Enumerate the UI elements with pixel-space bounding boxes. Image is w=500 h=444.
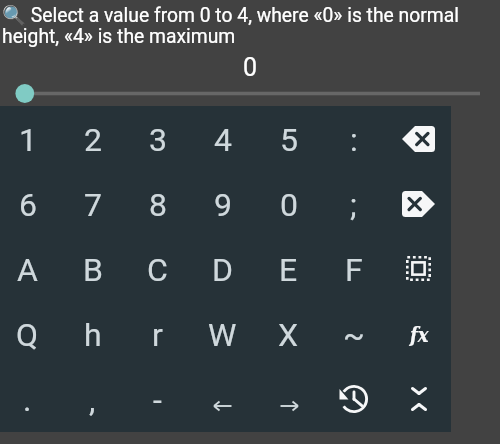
staticText: . (23, 381, 32, 419)
staticText: - (153, 381, 162, 419)
staticText: X (278, 316, 299, 354)
button[interactable] (256, 366, 321, 431)
staticText: 5 (280, 121, 298, 159)
staticText: 1 (19, 121, 37, 159)
button[interactable]: 7 (60, 171, 125, 236)
staticText: 3 (149, 121, 167, 159)
button[interactable]: 9 (190, 171, 255, 236)
button[interactable]: W (190, 301, 255, 366)
staticText: r (152, 316, 163, 354)
button[interactable]: Collapse keyboard (386, 366, 451, 431)
staticText: A (17, 251, 38, 289)
button[interactable]: h (60, 301, 125, 366)
staticText: : (350, 121, 358, 159)
staticText: fx (410, 323, 429, 346)
staticText: E (279, 251, 298, 289)
button[interactable]: 3 (125, 106, 190, 171)
button[interactable]: - (125, 366, 190, 431)
staticText: B (83, 251, 103, 289)
button[interactable]: Q (0, 301, 60, 366)
staticText: 🔍 Select a value from 0 to 4, where «0» … (2, 4, 497, 48)
button[interactable]: r (125, 301, 190, 366)
staticText: 9 (214, 186, 232, 224)
button[interactable] (190, 366, 255, 431)
staticText: ~ (343, 316, 365, 354)
button[interactable]: . (0, 366, 60, 431)
button[interactable]: 6 (0, 171, 60, 236)
staticText: 0 (0, 53, 500, 82)
button[interactable]: History (321, 366, 386, 431)
button[interactable]: 4 (190, 106, 255, 171)
staticText: D (212, 251, 233, 289)
button[interactable]: 8 (125, 171, 190, 236)
button[interactable]: Backspace (386, 106, 451, 171)
staticText: 4 (214, 121, 232, 159)
button[interactable]: Functions (386, 301, 451, 366)
button[interactable]: D (190, 236, 255, 301)
button[interactable]: 5 (256, 106, 321, 171)
button[interactable]: : (321, 106, 386, 171)
staticText: C (147, 251, 168, 289)
button[interactable]: C (125, 236, 190, 301)
button[interactable]: 2 (60, 106, 125, 171)
button[interactable]: E (256, 236, 321, 301)
button[interactable]: ; (321, 171, 386, 236)
button[interactable]: Value slider (0, 80, 500, 106)
staticText: 8 (149, 186, 167, 224)
staticText: ; (350, 186, 357, 224)
button[interactable]: F (321, 236, 386, 301)
button[interactable]: X (256, 301, 321, 366)
staticText: , (89, 381, 96, 419)
staticText: W (208, 316, 237, 354)
staticText: 0 (280, 186, 298, 224)
button[interactable]: ~ (321, 301, 386, 366)
button[interactable]: Delete (386, 171, 451, 236)
button[interactable]: A (0, 236, 60, 301)
staticText: Q (16, 316, 39, 354)
button[interactable]: B (60, 236, 125, 301)
staticText: 7 (84, 186, 102, 224)
button[interactable]: Select all (386, 236, 451, 301)
button[interactable]: 1 (0, 106, 60, 171)
staticText: 2 (84, 121, 102, 159)
button[interactable]: , (60, 366, 125, 431)
button[interactable]: 0 (256, 171, 321, 236)
staticText: 6 (19, 186, 37, 224)
staticText: F (345, 251, 363, 289)
staticText: h (84, 316, 102, 354)
